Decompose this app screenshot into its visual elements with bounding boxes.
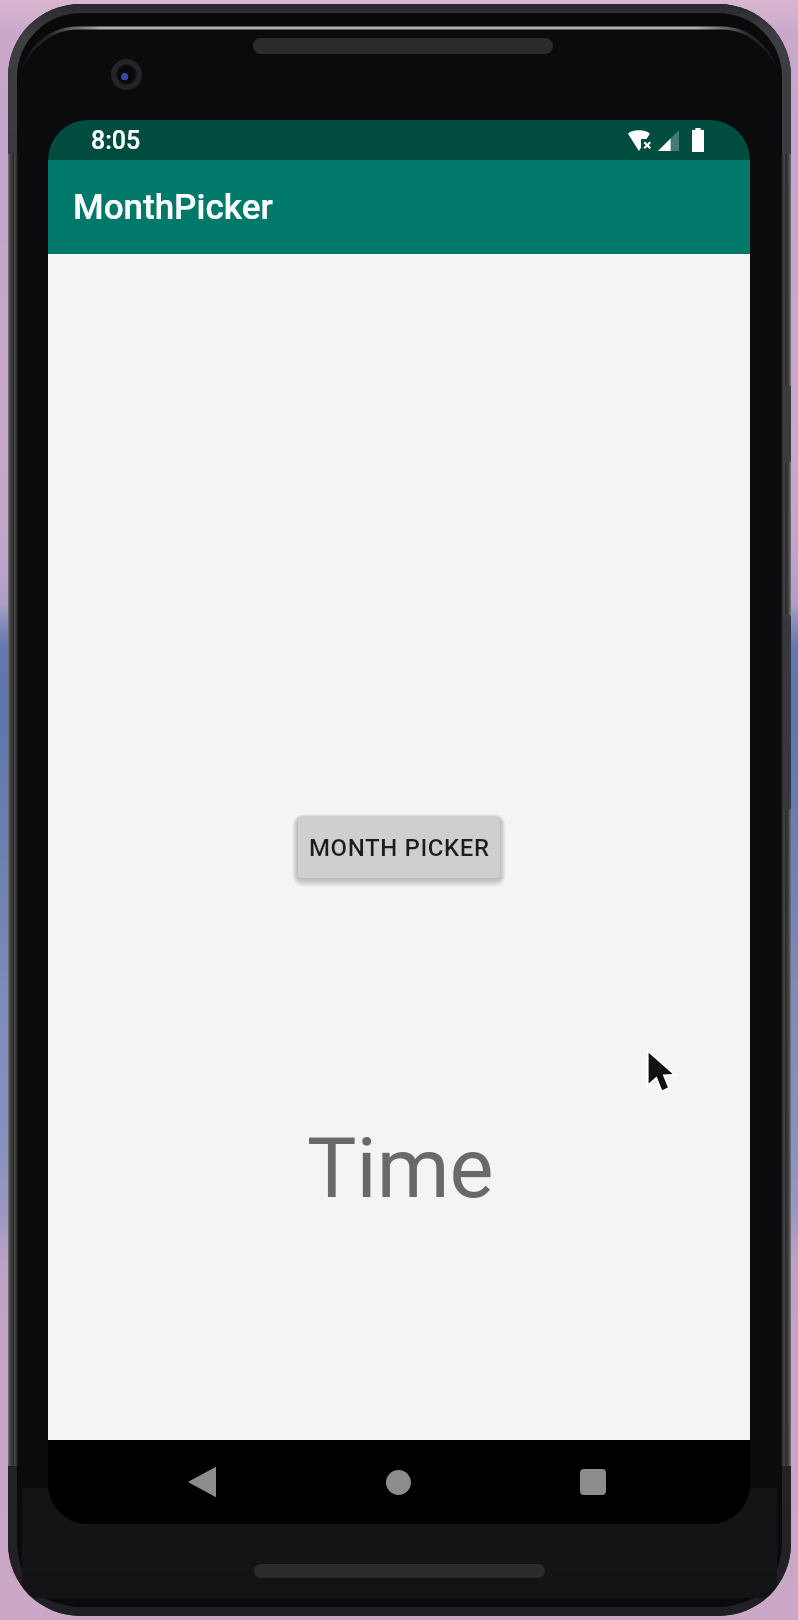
staticText: MONTH PICKER xyxy=(309,834,490,862)
staticText: MonthPicker xyxy=(73,187,273,228)
staticText: Time xyxy=(307,1120,494,1217)
button[interactable]: Back xyxy=(160,1440,244,1524)
button[interactable]: MONTH PICKER xyxy=(298,817,500,878)
button[interactable]: Recent apps xyxy=(551,1440,635,1524)
staticText: 8:05 xyxy=(91,126,141,155)
button[interactable]: Home xyxy=(356,1440,440,1524)
